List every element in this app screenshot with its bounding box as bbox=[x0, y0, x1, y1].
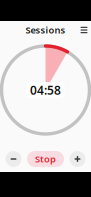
staticText: 04:58 bbox=[30, 82, 61, 98]
staticText: Sessions bbox=[25, 24, 65, 36]
button[interactable]: Stop bbox=[27, 151, 64, 167]
button[interactable]: Decrease bbox=[5, 151, 21, 167]
button[interactable]: Increase bbox=[69, 151, 85, 167]
button[interactable]: Menu bbox=[77, 23, 90, 36]
staticText: Stop bbox=[35, 153, 56, 165]
